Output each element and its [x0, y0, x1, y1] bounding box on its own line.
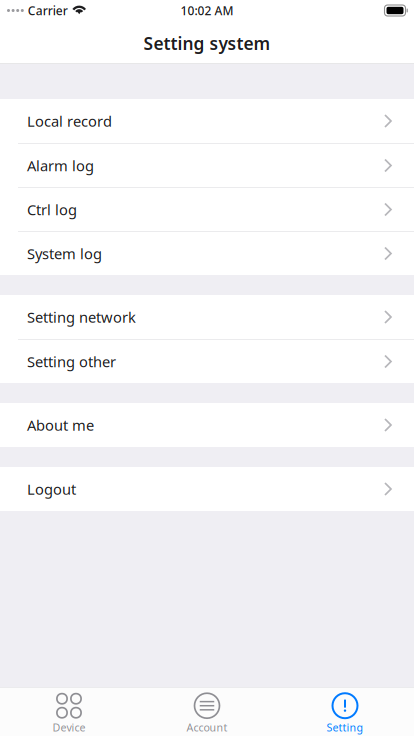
staticText: Local record: [27, 111, 112, 131]
staticText: Setting: [326, 720, 363, 734]
button[interactable]: Account: [138, 687, 276, 736]
staticText: Setting network: [27, 307, 136, 327]
staticText: Setting other: [27, 352, 116, 371]
staticText: Account: [186, 720, 227, 734]
staticText: Carrier: [28, 2, 68, 18]
staticText: Setting system: [143, 32, 270, 55]
staticText: Alarm log: [27, 156, 94, 175]
button[interactable]: System log: [0, 231, 414, 275]
staticText: 10:02 AM: [180, 2, 233, 18]
button[interactable]: Setting network: [0, 295, 414, 339]
button[interactable]: Setting other: [0, 339, 414, 383]
button[interactable]: Alarm log: [0, 143, 414, 187]
button[interactable]: Local record: [0, 99, 414, 143]
button[interactable]: Logout: [0, 467, 414, 511]
staticText: Device: [52, 720, 85, 734]
staticText: Logout: [27, 479, 76, 499]
staticText: System log: [27, 244, 102, 263]
button[interactable]: Device: [0, 687, 138, 736]
staticText: About me: [27, 415, 94, 435]
button[interactable]: About me: [0, 403, 414, 447]
button[interactable]: Ctrl log: [0, 187, 414, 231]
staticText: Ctrl log: [27, 200, 77, 219]
button[interactable]: Setting: [276, 687, 414, 736]
